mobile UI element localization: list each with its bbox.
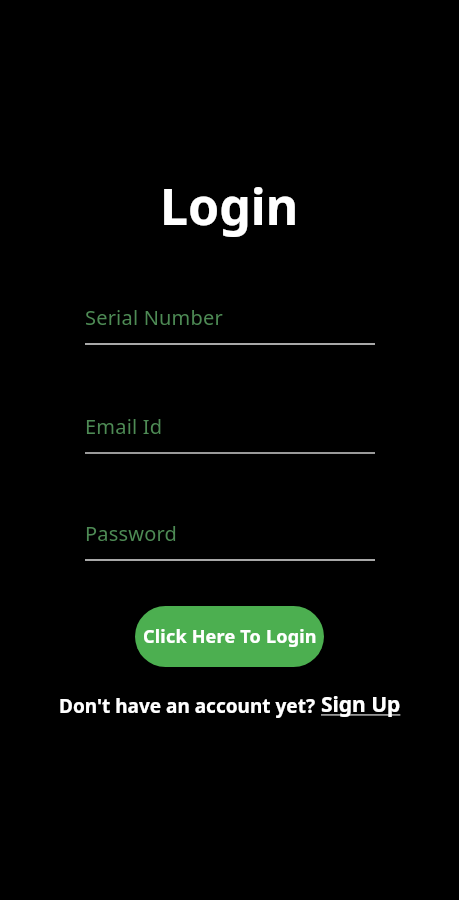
button[interactable]: Password [85,520,375,561]
staticText: Password [85,520,178,547]
button[interactable]: Sign Up [321,690,401,719]
staticText: Click Here To Login [143,624,317,649]
button[interactable]: Email Id [85,413,375,454]
button[interactable]: Serial Number [85,304,375,345]
button[interactable]: Click Here To Login [135,606,324,667]
staticText: Sign Up [321,690,401,719]
staticText: Login [160,172,299,240]
staticText: Email Id [85,413,163,440]
staticText: Serial Number [85,304,223,331]
staticText: Don't have an account yet? [59,693,315,719]
